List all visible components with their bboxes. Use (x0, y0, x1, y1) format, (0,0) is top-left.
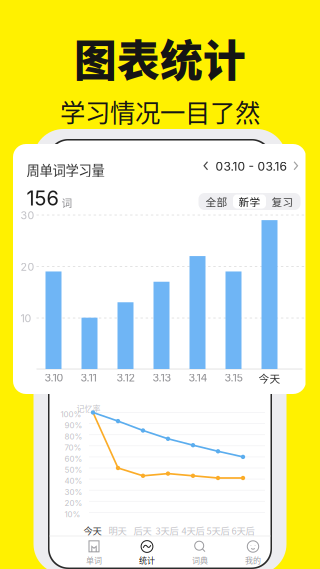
staticText: 词典 (192, 554, 208, 566)
staticText: 记忆率 (76, 402, 100, 414)
staticText: 3.10 (44, 371, 63, 384)
staticText: 70% (64, 443, 81, 452)
staticText: 统计 (139, 554, 155, 566)
staticText: 40% (64, 476, 82, 486)
staticText: 后天 (133, 524, 151, 537)
button[interactable]: 统计 (120, 539, 173, 567)
staticText: 80% (64, 432, 82, 441)
staticText: 4天后 (181, 524, 204, 537)
staticText: 156 (26, 186, 58, 210)
staticText: 3.12 (116, 371, 135, 384)
staticText: 我的 (245, 554, 261, 566)
staticText: 50% (64, 465, 82, 475)
staticText: 3.14 (188, 371, 207, 384)
staticText: 学习情况一目了然 (60, 93, 260, 129)
staticText: 单词 (86, 554, 102, 566)
staticText: 90% (64, 421, 82, 430)
staticText: 60% (64, 454, 82, 464)
staticText: 3天后 (155, 524, 178, 537)
staticText: 6天后 (231, 524, 254, 537)
staticText: 100% (60, 409, 81, 419)
staticText: 图表统计 (74, 27, 246, 89)
button[interactable]: 我的 (226, 539, 279, 567)
staticText: 20 (20, 260, 34, 273)
button[interactable]: 03.10 - 03.16 (203, 159, 298, 173)
button[interactable]: 全部 (200, 194, 233, 208)
staticText: 3.15 (224, 371, 242, 384)
button[interactable]: 复习 (266, 194, 299, 208)
staticText: 10 (20, 312, 31, 325)
staticText: 30% (64, 487, 82, 497)
staticText: 全部 (205, 194, 227, 209)
staticText: 20% (64, 498, 82, 508)
staticText: 5天后 (206, 524, 229, 537)
staticText: 复习 (271, 194, 293, 209)
staticText: 明天 (108, 524, 126, 537)
staticText: 3.13 (152, 371, 171, 384)
staticText: 03.10 - 03.16 (215, 159, 286, 173)
staticText: 今天 (258, 370, 280, 386)
staticText: 3.11 (80, 371, 96, 384)
button[interactable]: 单词 (67, 539, 120, 567)
staticText: 30 (20, 209, 34, 222)
staticText: 周单词学习量 (26, 160, 104, 179)
staticText: 今天 (83, 524, 101, 537)
staticText: 10% (64, 509, 80, 519)
button[interactable]: 新学 (233, 194, 266, 208)
button[interactable]: 词典 (173, 539, 226, 567)
staticText: 词 (61, 195, 72, 210)
staticText: 新学 (238, 194, 260, 209)
